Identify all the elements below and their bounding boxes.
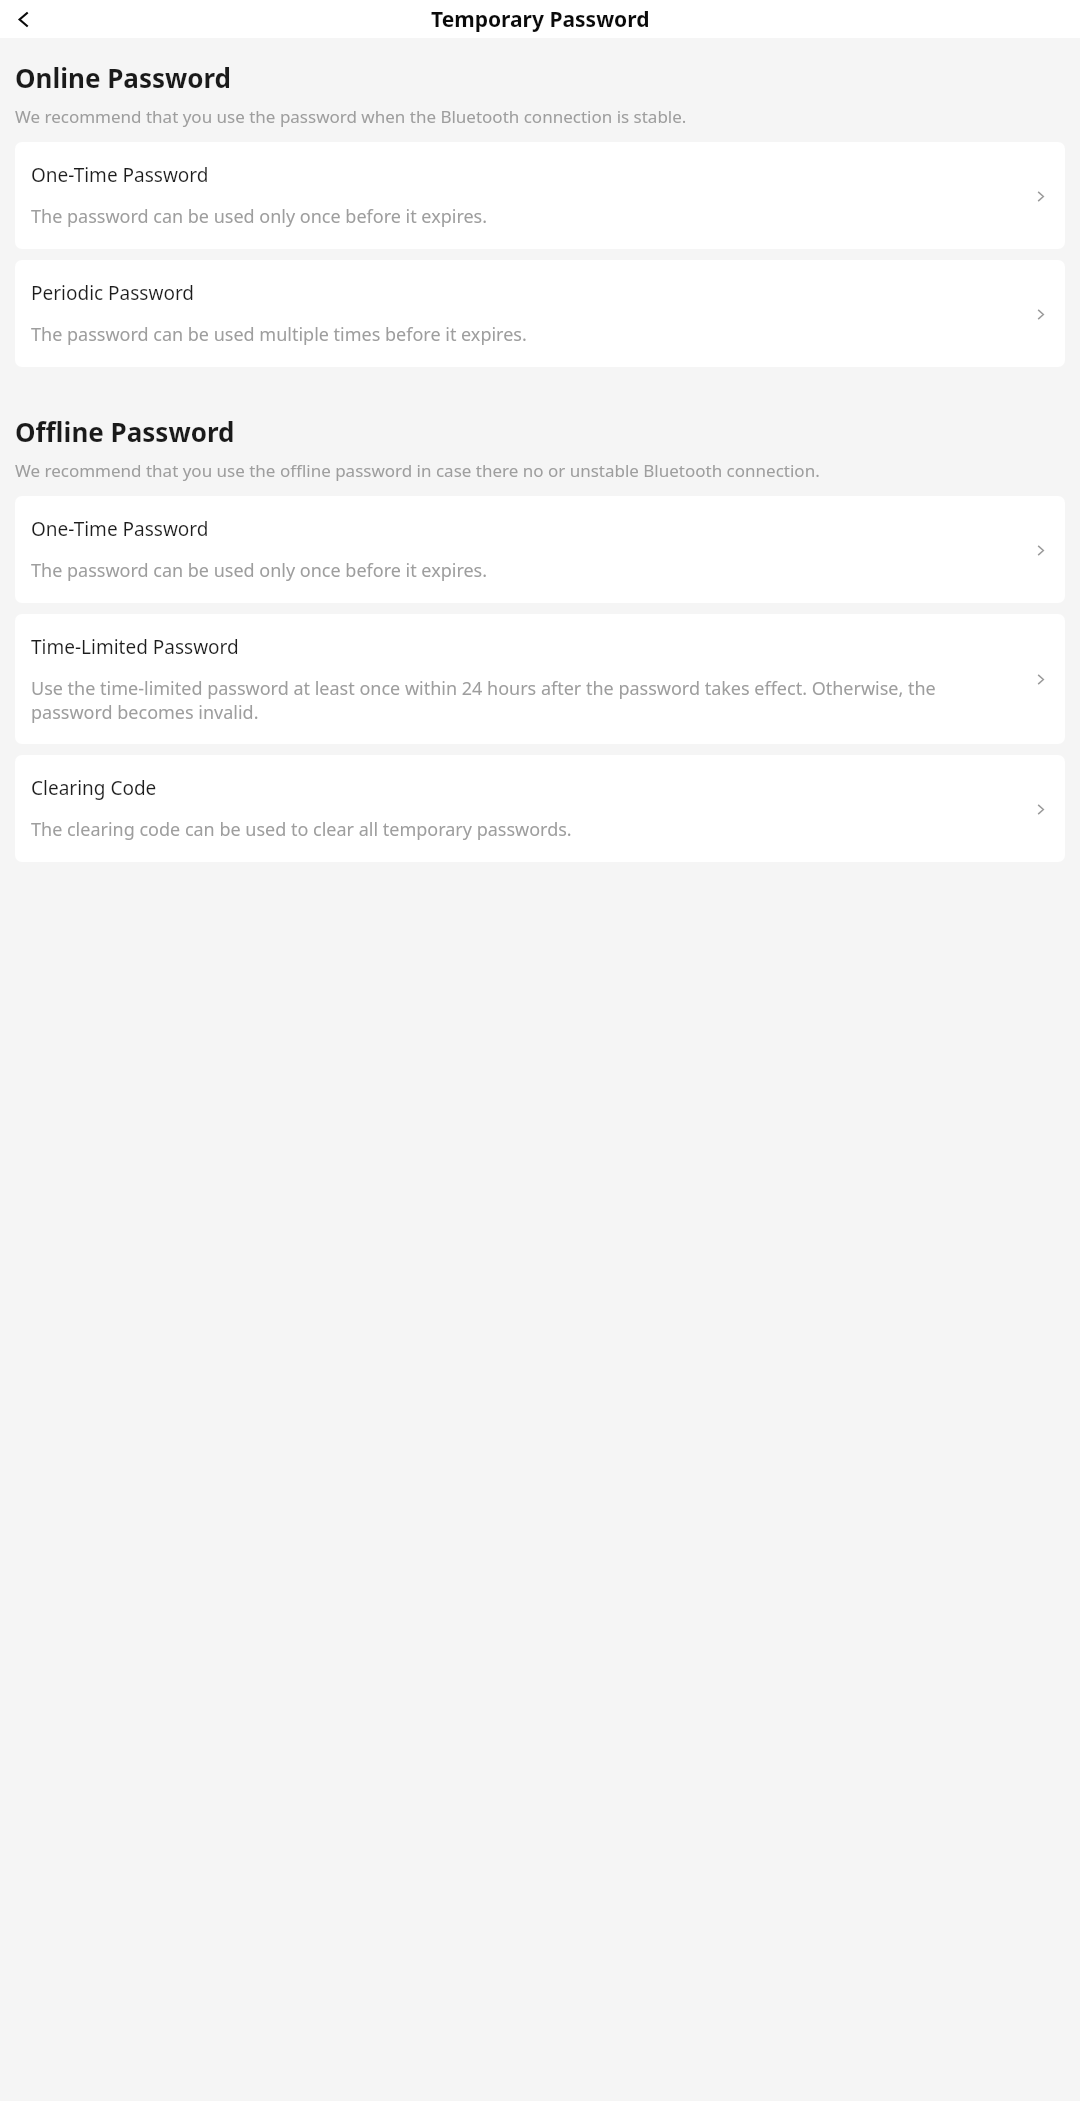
button[interactable]: Clearing Code [15,755,1065,862]
staticText: Use the time-limited password at least o… [31,676,1017,724]
button[interactable]: One-Time Password [15,142,1065,249]
staticText: Offline Password [15,414,235,449]
staticText: The password can be used only once befor… [31,204,488,229]
button[interactable]: Back [6,2,40,36]
staticText: Time-Limited Password [31,634,239,660]
staticText: Clearing Code [31,775,157,801]
button[interactable]: Time-Limited Password [15,614,1065,744]
staticText: The password can be used only once befor… [31,558,488,583]
staticText: Temporary Password [431,5,650,34]
staticText: One-Time Password [31,162,209,188]
staticText: Online Password [15,60,232,95]
button[interactable]: Periodic Password [15,260,1065,367]
staticText: One-Time Password [31,516,209,542]
button[interactable]: One-Time Password [15,496,1065,603]
staticText: Periodic Password [31,280,195,306]
staticText: We recommend that you use the offline pa… [15,459,820,482]
staticText: The password can be used multiple times … [31,322,527,347]
staticText: The clearing code can be used to clear a… [31,817,572,842]
staticText: We recommend that you use the password w… [15,105,687,128]
